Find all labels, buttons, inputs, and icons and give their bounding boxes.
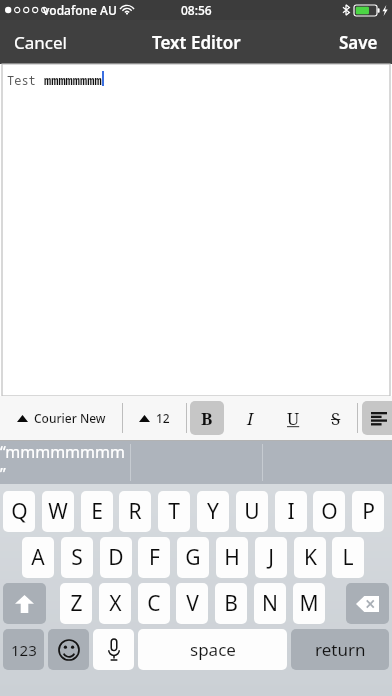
button[interactable]: A	[22, 537, 54, 578]
staticText: T	[168, 497, 180, 526]
staticText: C	[147, 589, 161, 618]
button[interactable]: Dictate	[93, 629, 134, 670]
button[interactable]: N	[254, 583, 286, 624]
staticText: P	[362, 497, 375, 526]
button[interactable]: T	[158, 491, 190, 532]
button[interactable]: W	[42, 491, 74, 532]
button[interactable]: O	[313, 491, 345, 532]
staticText: O	[321, 497, 338, 526]
button[interactable]: Cancel	[0, 20, 81, 64]
button[interactable]: S	[319, 401, 353, 435]
staticText: B	[224, 589, 238, 618]
button[interactable]: F	[138, 537, 170, 578]
button[interactable]: G	[177, 537, 209, 578]
staticText: V	[186, 589, 199, 618]
staticText: R	[128, 497, 142, 526]
button[interactable]: M	[293, 583, 325, 624]
staticText: space	[190, 638, 236, 661]
staticText: Courier New	[34, 410, 106, 426]
staticText: vodafone AU	[43, 2, 117, 18]
button[interactable]: 123	[3, 629, 44, 670]
staticText: W	[48, 497, 68, 526]
staticText: G	[185, 543, 201, 572]
staticText: “mmmmmmmm”	[0, 441, 130, 484]
staticText: U	[287, 407, 300, 430]
button[interactable]: Backspace	[346, 583, 389, 624]
button[interactable]: D	[100, 537, 132, 578]
staticText: Q	[11, 497, 28, 526]
button[interactable]: B	[190, 401, 224, 435]
button[interactable]: return	[291, 629, 389, 670]
staticText: Cancel	[14, 31, 67, 54]
button[interactable]: U	[276, 401, 310, 435]
button[interactable]: V	[176, 583, 208, 624]
staticText: Save	[339, 31, 378, 54]
button[interactable]: H	[216, 537, 248, 578]
button[interactable]: “mmmmmmmm”	[0, 441, 130, 484]
button[interactable]: Save	[325, 20, 392, 64]
button[interactable]: Test	[0, 64, 392, 396]
staticText: 08:56	[181, 2, 212, 18]
staticText: N	[262, 589, 278, 618]
button[interactable]: I	[275, 491, 307, 532]
button[interactable]: B	[215, 583, 247, 624]
staticText: X	[109, 589, 122, 618]
staticText: Text Editor	[152, 31, 241, 54]
button[interactable]: I	[233, 401, 267, 435]
staticText: I	[287, 497, 295, 526]
button[interactable]: K	[294, 537, 326, 578]
button[interactable]: 12	[123, 396, 186, 440]
button[interactable]: Shift	[3, 583, 46, 624]
button[interactable]: Q	[3, 491, 35, 532]
button[interactable]: Align	[362, 401, 392, 435]
staticText: D	[108, 543, 124, 572]
button[interactable]: L	[332, 537, 364, 578]
button[interactable]: J	[255, 537, 287, 578]
button[interactable]: Z	[60, 583, 92, 624]
staticText: B	[201, 407, 213, 430]
staticText: L	[342, 543, 354, 572]
staticText: S	[331, 407, 341, 430]
button[interactable]: P	[352, 491, 384, 532]
staticText: U	[244, 497, 260, 526]
staticText: Test	[7, 72, 44, 88]
staticText: E	[91, 497, 103, 526]
staticText: 12	[156, 410, 170, 426]
staticText: J	[268, 543, 274, 572]
staticText: return	[315, 638, 366, 661]
staticText: H	[224, 543, 240, 572]
button[interactable]: E	[81, 491, 113, 532]
button[interactable]: Y	[197, 491, 229, 532]
staticText: F	[149, 543, 160, 572]
staticText: S	[71, 543, 83, 572]
staticText: Y	[207, 497, 219, 526]
button[interactable]: Emoji	[48, 629, 89, 670]
staticText: K	[304, 543, 317, 572]
staticText: M	[299, 589, 319, 618]
button[interactable]: U	[236, 491, 268, 532]
staticText: mmmmmmmm	[44, 72, 102, 88]
button[interactable]: C	[138, 583, 170, 624]
staticText: 123	[11, 640, 37, 660]
button[interactable]: S	[61, 537, 93, 578]
button[interactable]: Courier New	[0, 396, 122, 440]
button[interactable]: space	[138, 629, 287, 670]
staticText: Z	[70, 589, 83, 618]
button[interactable]: R	[119, 491, 151, 532]
button[interactable]: X	[99, 583, 131, 624]
staticText: A	[31, 543, 45, 572]
staticText: I	[247, 407, 254, 430]
